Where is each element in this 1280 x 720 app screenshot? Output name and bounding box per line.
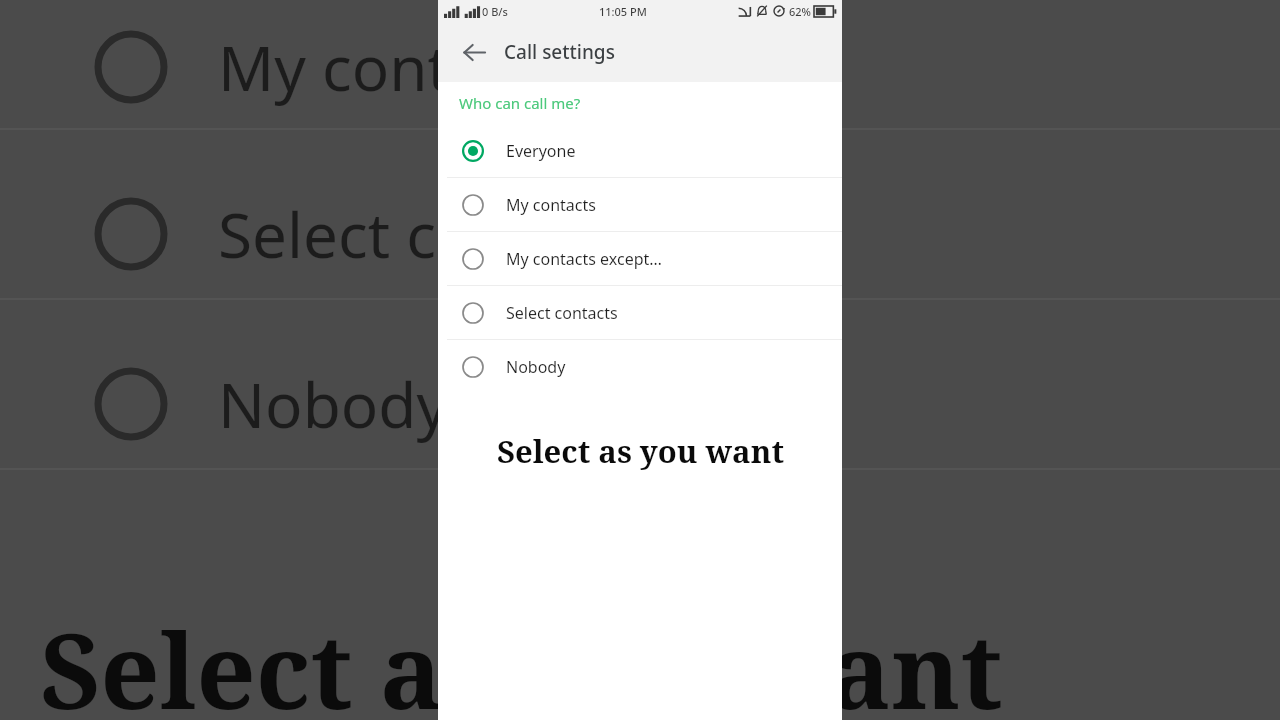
staticText: 11:05 PM xyxy=(599,4,647,19)
button[interactable]: Back xyxy=(452,30,496,74)
staticText: 62% xyxy=(789,4,811,19)
staticText: Select c xyxy=(218,192,436,276)
staticText: My contacts xyxy=(506,194,596,216)
staticText: My contacts except… xyxy=(506,248,662,270)
button[interactable]: Nobody xyxy=(438,340,842,393)
staticText: 0 B/s xyxy=(482,4,508,19)
staticText: My cont xyxy=(218,25,450,109)
staticText: Select as you want xyxy=(40,598,1003,720)
button[interactable]: Select contacts xyxy=(438,286,842,339)
button[interactable]: Everyone xyxy=(438,124,842,177)
staticText: Everyone xyxy=(506,140,576,162)
button[interactable]: My contacts except… xyxy=(438,232,842,285)
staticText: Nobody xyxy=(218,362,449,446)
staticText: Who can call me? xyxy=(459,93,581,113)
staticText: Select as you want xyxy=(497,430,784,472)
staticText: Select contacts xyxy=(506,302,618,324)
staticText: Call settings xyxy=(504,39,615,65)
staticText: Nobody xyxy=(506,356,566,378)
button[interactable]: My contacts xyxy=(438,178,842,231)
